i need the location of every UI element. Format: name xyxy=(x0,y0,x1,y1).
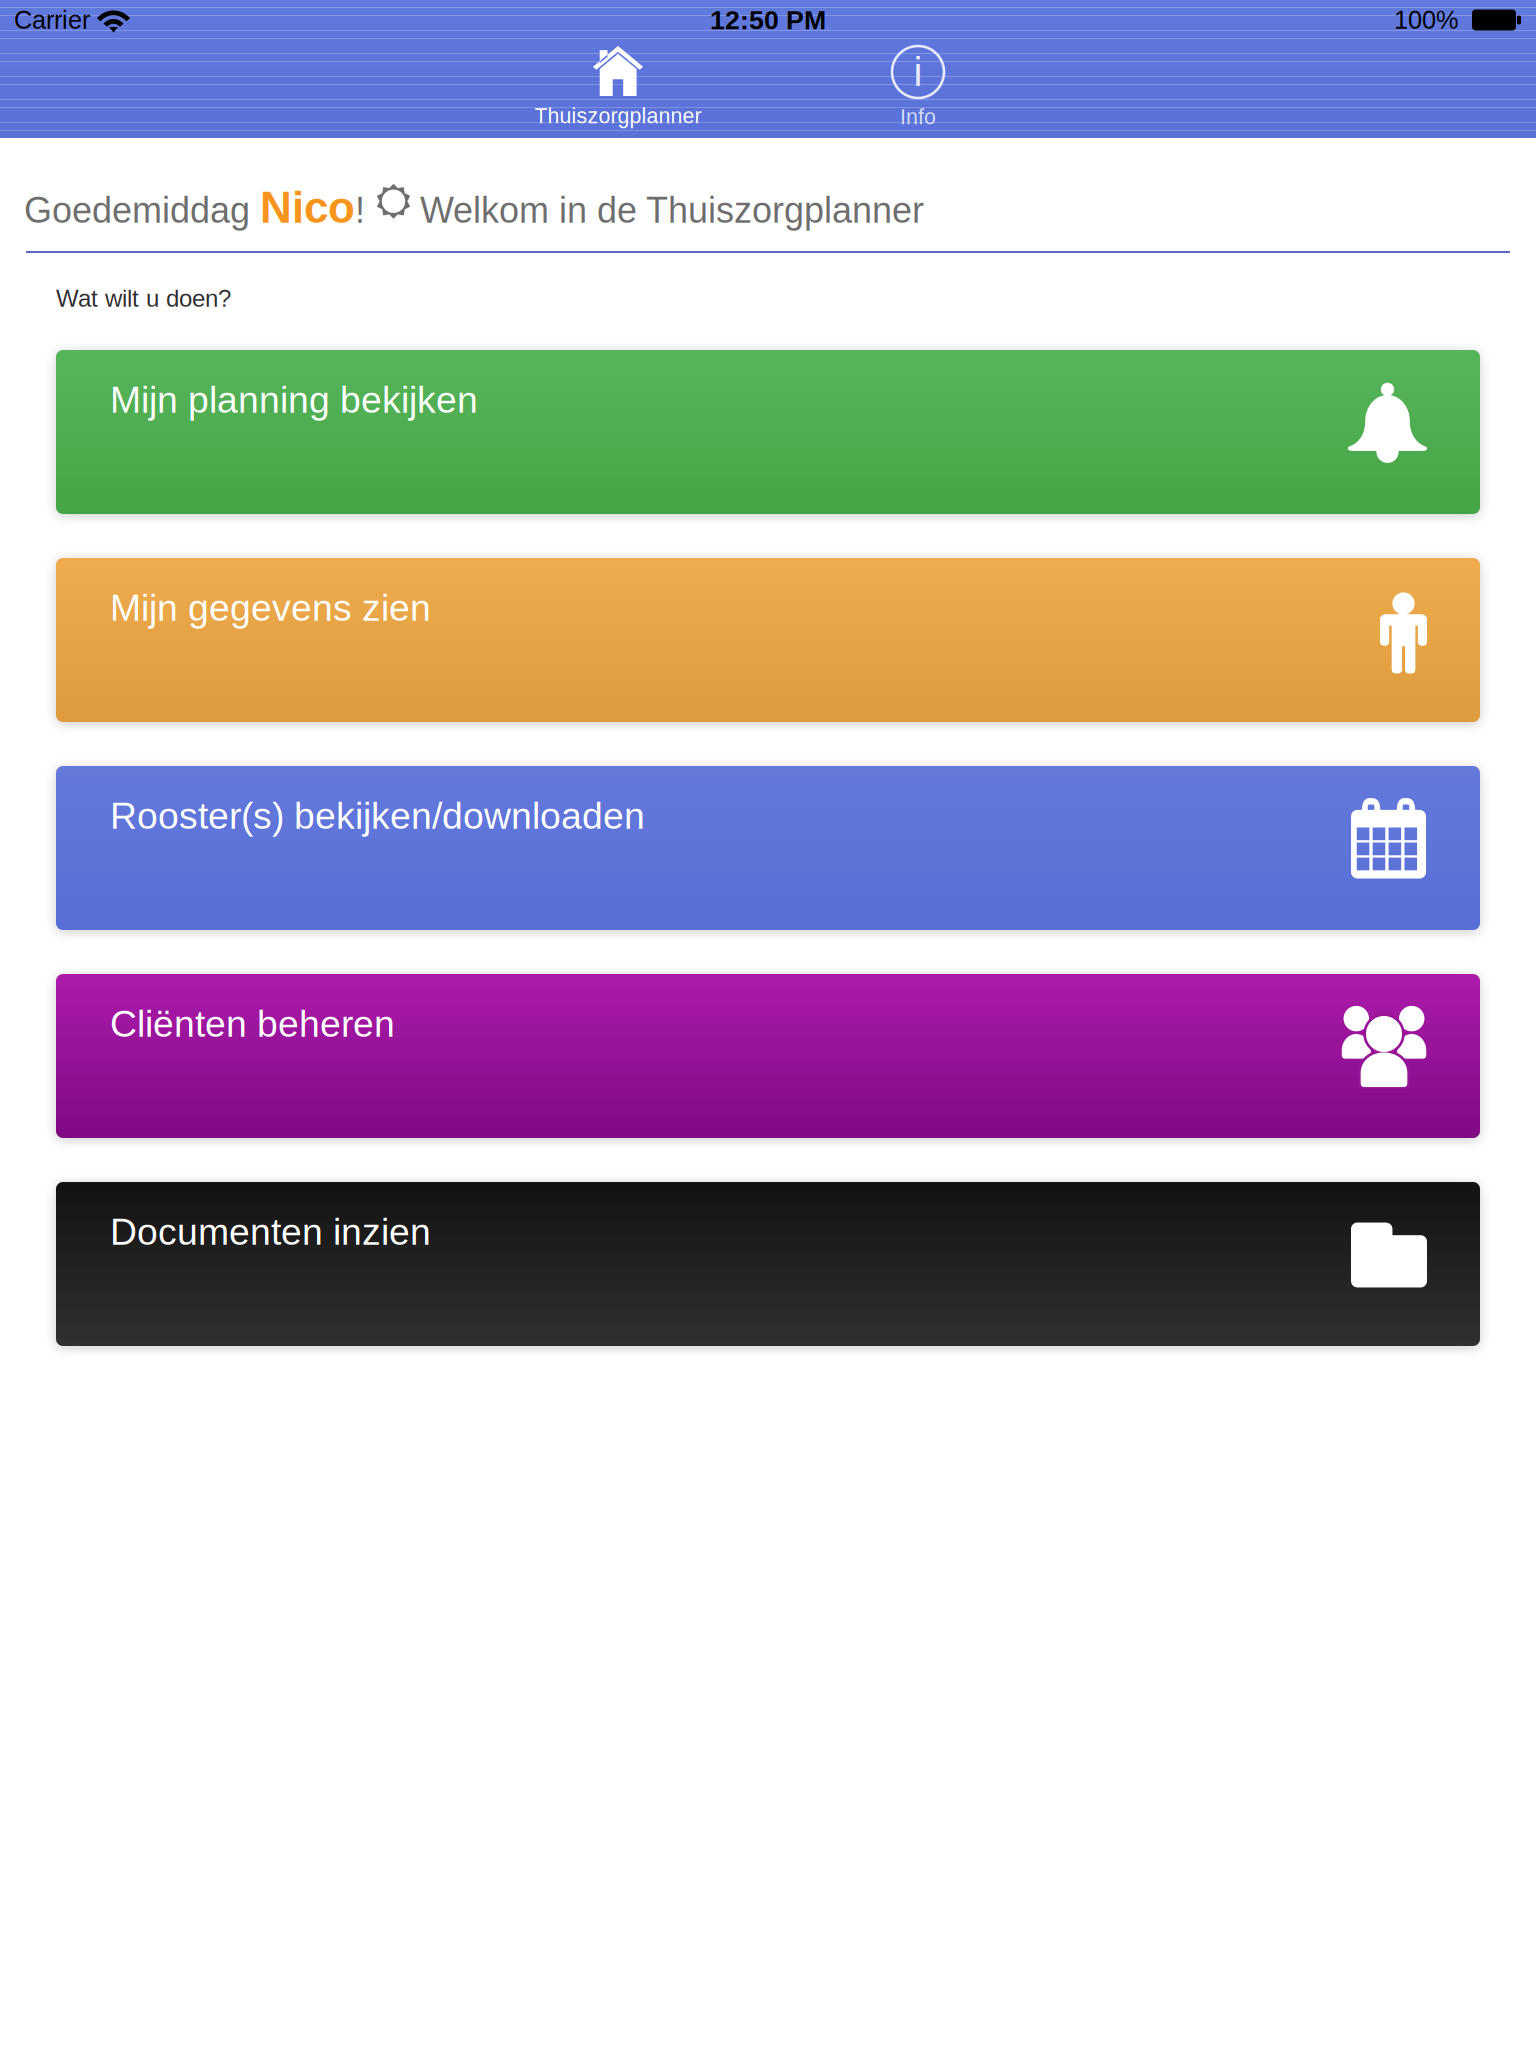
staticText: Thuiszorgplanner xyxy=(534,104,701,128)
button[interactable]: Cliënten beheren xyxy=(56,974,1480,1138)
staticText: Cliënten beheren xyxy=(110,1003,395,1045)
button[interactable]: i xyxy=(768,40,1068,138)
staticText: Welkom in de Thuiszorgplanner xyxy=(420,190,924,230)
staticText: Documenten inzien xyxy=(110,1211,431,1253)
staticText: Goedemiddag xyxy=(24,190,260,230)
staticText: Carrier xyxy=(14,6,90,34)
staticText: Mijn planning bekijken xyxy=(110,379,478,421)
staticText: Mijn gegevens zien xyxy=(110,587,431,629)
staticText: Nico xyxy=(260,183,355,232)
staticText: 12:50 PM xyxy=(710,5,826,35)
button[interactable]: Rooster(s) bekijken/downloaden xyxy=(56,766,1480,930)
button[interactable]: Thuiszorgplanner xyxy=(468,40,768,138)
button[interactable]: Mijn gegevens zien xyxy=(56,558,1480,722)
staticText: Rooster(s) bekijken/downloaden xyxy=(110,795,645,837)
staticText: 100% xyxy=(1394,6,1459,34)
staticText: Wat wilt u doen? xyxy=(56,285,231,312)
staticText: ! xyxy=(355,190,365,230)
button[interactable]: Documenten inzien xyxy=(56,1182,1480,1346)
staticText: i xyxy=(913,49,922,94)
staticText: Info xyxy=(900,105,936,129)
button[interactable]: Mijn planning bekijken xyxy=(56,350,1480,514)
